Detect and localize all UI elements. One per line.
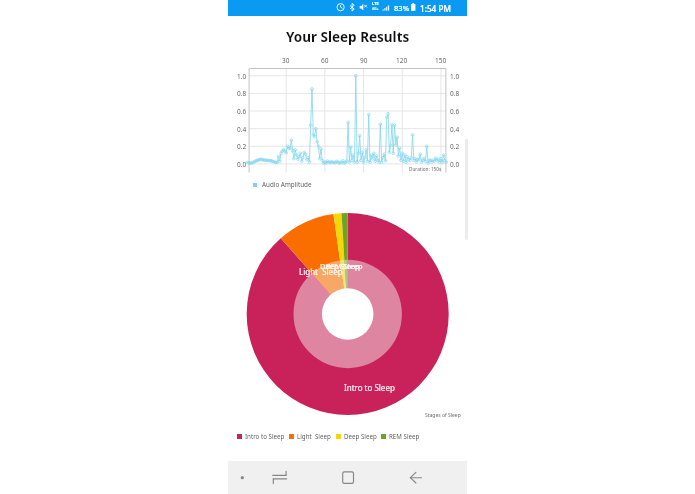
staticText: Duration: 150s (409, 166, 442, 172)
button[interactable]: Back (396, 461, 436, 494)
staticText: 120 (396, 56, 408, 65)
staticText: 60 (321, 56, 329, 65)
staticText: 0.4 (450, 125, 460, 134)
staticText: 0.8 (450, 89, 460, 98)
staticText: 1:54 PM (420, 3, 451, 14)
staticText: 1.0 (450, 72, 460, 81)
staticText: 0.2 (450, 142, 460, 151)
staticText: 0.4 (237, 125, 247, 134)
staticText: Intro to Sleep (245, 432, 285, 440)
staticText: REM Sleep (326, 261, 363, 271)
staticText: Intro to Sleep (344, 382, 395, 393)
staticText: 0.2 (237, 142, 247, 151)
staticText: Stages of Sleep (425, 412, 461, 419)
staticText: Your Sleep Results (286, 28, 410, 46)
staticText: Light Sleep (299, 266, 343, 277)
staticText: Deep Sleep (320, 261, 360, 271)
button[interactable]: Recent apps (260, 461, 300, 494)
staticText: REM Sleep (389, 432, 420, 440)
staticText: 4G+ (372, 6, 379, 11)
staticText: 0.0 (450, 160, 460, 169)
staticText: 83% (394, 3, 410, 13)
staticText: Audio Amplitude (262, 180, 312, 189)
button[interactable]: Menu (222, 461, 262, 494)
button[interactable]: Intro to Sleep (237, 432, 289, 440)
staticText: 30 (282, 56, 290, 65)
staticText: 0.6 (450, 107, 460, 116)
staticText: 0.6 (237, 107, 247, 116)
staticText: 0.0 (237, 160, 247, 169)
staticText: Deep Sleep (344, 432, 377, 440)
staticText: 0.8 (237, 89, 247, 98)
staticText: 150 (435, 56, 447, 65)
staticText: LTE (372, 1, 379, 6)
staticText: 1.0 (237, 72, 247, 81)
staticText: Light Sleep (297, 432, 331, 440)
button[interactable]: Deep Sleep (336, 432, 381, 440)
button[interactable]: REM Sleep (381, 432, 423, 440)
staticText: 90 (360, 56, 368, 65)
button[interactable]: Light Sleep (289, 432, 336, 440)
button[interactable]: Home (328, 461, 368, 494)
